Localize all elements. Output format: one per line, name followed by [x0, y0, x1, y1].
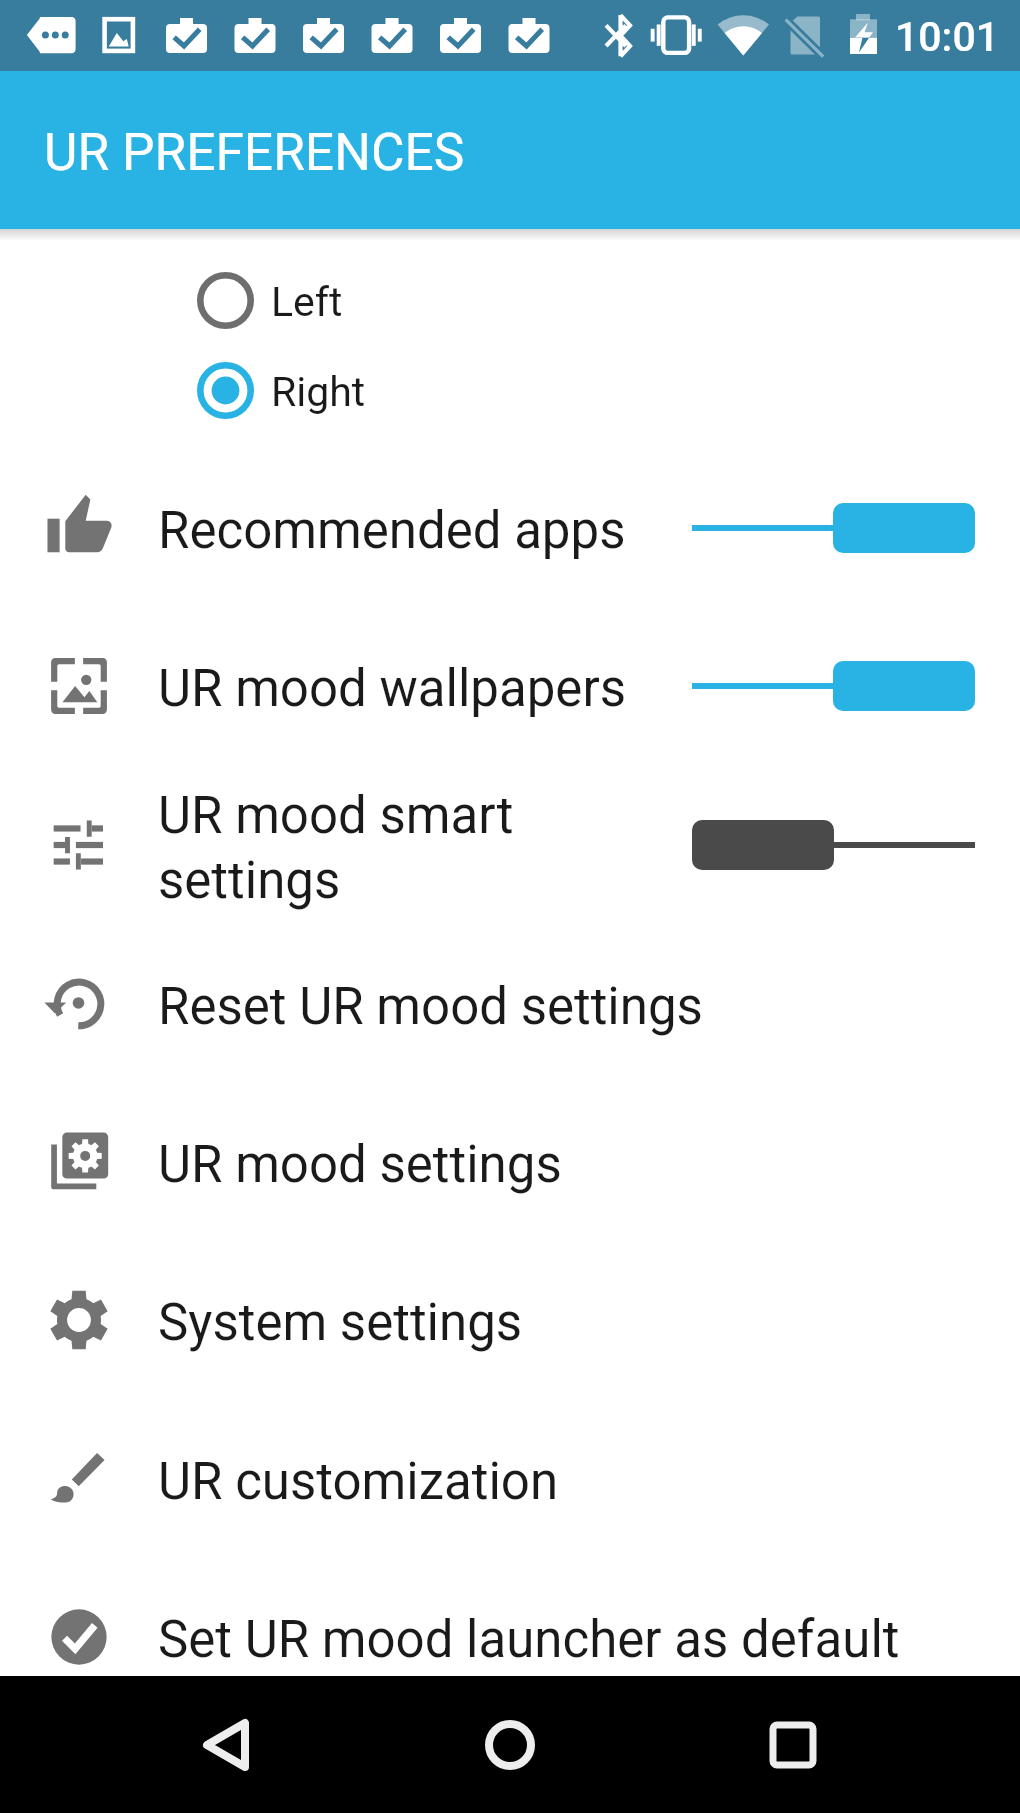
button[interactable]: Recents	[770, 1722, 816, 1768]
staticText: System settings	[158, 1293, 978, 1353]
staticText: Recommended apps	[158, 501, 678, 561]
staticText: UR mood settings	[158, 1135, 978, 1195]
button[interactable]: UR customization	[0, 1400, 1020, 1558]
button[interactable]: Reset UR mood settings	[0, 925, 1020, 1083]
button[interactable]: Set UR mood launcher as default	[0, 1558, 1020, 1716]
button[interactable]: System settings	[0, 1241, 1020, 1399]
staticText: UR mood smart settings	[158, 786, 558, 911]
staticText: Right	[271, 368, 366, 416]
button[interactable]: UR mood settings	[0, 1083, 1020, 1241]
button[interactable]: Left	[0, 255, 1020, 345]
button[interactable]: UR mood smart settings	[0, 766, 1020, 924]
staticText: UR mood wallpapers	[158, 659, 678, 719]
button[interactable]: Recommended apps	[0, 449, 1020, 607]
staticText: Left	[271, 278, 343, 326]
button[interactable]: UR mood wallpapers	[0, 607, 1020, 765]
button[interactable]: Back	[199, 1715, 253, 1775]
button[interactable]: Right	[0, 345, 1020, 435]
staticText: UR customization	[158, 1452, 978, 1512]
staticText: Reset UR mood settings	[158, 977, 978, 1037]
button[interactable]: Home	[485, 1720, 535, 1770]
staticText: Set UR mood launcher as default	[158, 1610, 1008, 1670]
staticText: 10:01	[895, 13, 1000, 61]
staticText: UR PREFERENCES	[44, 122, 465, 182]
